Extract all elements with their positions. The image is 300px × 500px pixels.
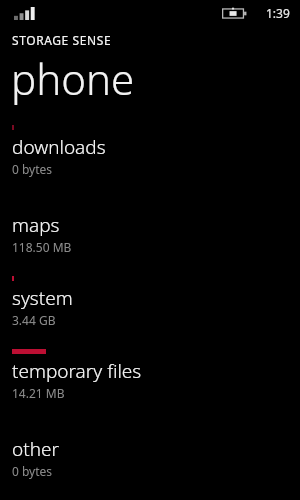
staticText: STORAGE SENSE: [12, 32, 112, 48]
staticText: phone: [11, 50, 135, 107]
button[interactable]: system: [0, 255, 300, 328]
staticText: 0 bytes: [12, 463, 53, 479]
button[interactable]: downloads: [0, 125, 300, 177]
staticText: 1:39: [266, 5, 290, 21]
staticText: 0 bytes: [12, 161, 53, 177]
staticText: downloads: [12, 134, 106, 160]
staticText: other: [12, 436, 59, 462]
button[interactable]: other: [0, 401, 300, 479]
staticText: 14.21 MB: [12, 385, 65, 401]
staticText: 3.44 GB: [12, 312, 56, 328]
staticText: maps: [12, 212, 60, 238]
button[interactable]: maps: [0, 177, 300, 255]
staticText: 118.50 MB: [12, 239, 72, 255]
staticText: temporary files: [12, 358, 142, 384]
button[interactable]: temporary files: [0, 328, 300, 401]
staticText: system: [12, 285, 73, 311]
